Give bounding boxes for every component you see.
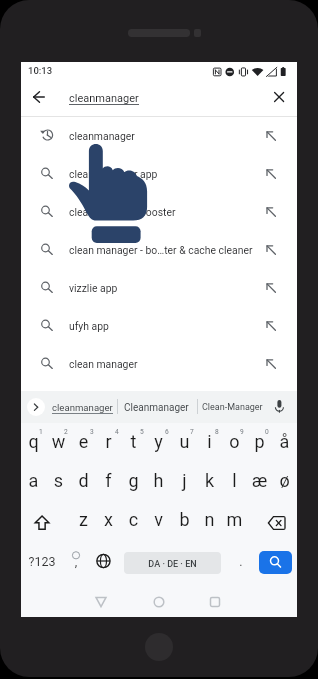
staticText: z <box>71 509 96 530</box>
button[interactable]: w <box>46 424 71 463</box>
button[interactable]: u <box>172 424 197 463</box>
button[interactable]: t <box>121 424 146 463</box>
staticText: 6 <box>165 428 169 436</box>
staticText: 2 <box>64 428 68 436</box>
button[interactable]: Space <box>124 552 221 574</box>
button[interactable]: Recent apps <box>200 588 230 616</box>
staticText: d <box>71 470 96 491</box>
staticText: n <box>197 509 222 530</box>
staticText: å <box>272 431 297 452</box>
button[interactable]: f <box>96 463 121 502</box>
staticText: f <box>96 470 121 491</box>
button[interactable]: y <box>146 424 171 463</box>
button[interactable]: clean manager <box>21 344 297 382</box>
staticText: e <box>71 431 96 452</box>
button[interactable]: Back <box>86 588 116 616</box>
staticText: 5 <box>140 428 144 436</box>
staticText: h <box>146 470 171 491</box>
button[interactable]: Clean-Manager <box>199 393 265 420</box>
staticText: 7 <box>190 428 194 436</box>
button[interactable]: cleanmanager <box>21 116 297 154</box>
button[interactable]: b <box>172 502 197 541</box>
button[interactable]: v <box>146 502 171 541</box>
staticText: g <box>121 470 146 491</box>
button[interactable]: g <box>121 463 146 502</box>
staticText: 3 <box>90 428 94 436</box>
button[interactable]: Cleanmanager <box>121 393 193 420</box>
staticText: cleanmanager <box>52 402 113 413</box>
staticText: l <box>222 470 247 491</box>
staticText: ufyh app <box>69 320 109 332</box>
staticText: u <box>172 431 197 452</box>
staticText: ø <box>272 470 297 491</box>
button[interactable]: cleanmanager <box>49 393 115 420</box>
button[interactable]: Voice input <box>268 395 290 417</box>
button[interactable]: d <box>71 463 96 502</box>
staticText: a <box>21 470 46 491</box>
button[interactable]: c <box>121 502 146 541</box>
staticText: ?123 <box>22 554 62 569</box>
staticText: 10:13 <box>28 65 53 76</box>
staticText: cleanmanager <box>69 92 139 105</box>
button[interactable]: Shift <box>21 502 71 541</box>
staticText: x <box>96 509 121 530</box>
button[interactable]: Back <box>25 83 53 111</box>
button[interactable]: vizzlie app <box>21 268 297 306</box>
button[interactable]: l <box>222 463 247 502</box>
button[interactable]: s <box>46 463 71 502</box>
staticText: clean manager - bo…ter & cache cleaner <box>69 244 253 256</box>
staticText: t <box>121 431 146 452</box>
button[interactable]: e <box>71 424 96 463</box>
staticText: b <box>172 509 197 530</box>
button[interactable]: Home <box>144 588 174 616</box>
button[interactable]: m <box>222 502 247 541</box>
staticText: clean manager booster <box>69 206 176 218</box>
button[interactable]: i <box>197 424 222 463</box>
button[interactable]: Backspace <box>247 502 297 541</box>
button[interactable]: Search <box>259 551 292 574</box>
staticText: clean manager <box>69 358 138 370</box>
button[interactable]: Clear search <box>265 83 293 111</box>
button[interactable]: j <box>172 463 197 502</box>
button[interactable]: h <box>146 463 171 502</box>
button[interactable]: clean manager app <box>21 154 297 192</box>
button[interactable]: , <box>61 541 86 580</box>
button[interactable]: k <box>197 463 222 502</box>
staticText: i <box>197 431 222 452</box>
staticText: Cleanmanager <box>124 402 189 414</box>
button[interactable]: o <box>222 424 247 463</box>
staticText: DA · DE · EN <box>124 559 221 570</box>
staticText: cleanmanager <box>69 130 135 142</box>
button[interactable]: å <box>272 424 297 463</box>
staticText: 1 <box>39 428 43 436</box>
button[interactable]: z <box>71 502 96 541</box>
staticText: j <box>172 470 197 491</box>
button[interactable]: p <box>247 424 272 463</box>
staticText: v <box>146 509 171 530</box>
button[interactable]: clean manager booster <box>21 192 297 230</box>
button[interactable]: x <box>96 502 121 541</box>
staticText: w <box>46 431 71 452</box>
button[interactable]: More suggestions <box>27 398 45 416</box>
button[interactable]: cleanmanager <box>65 84 265 110</box>
button[interactable]: ?123 <box>21 541 61 580</box>
staticText: 0 <box>265 428 269 436</box>
staticText: , <box>66 554 86 569</box>
button[interactable]: æ <box>247 463 272 502</box>
button[interactable]: n <box>197 502 222 541</box>
staticText: c <box>121 509 146 530</box>
staticText: vizzlie app <box>69 282 118 294</box>
staticText: y <box>146 431 171 452</box>
button[interactable]: ufyh app <box>21 306 297 344</box>
staticText: q <box>21 431 46 452</box>
button[interactable]: clean manager - bo…ter & cache cleaner <box>21 230 297 268</box>
button[interactable]: q <box>21 424 46 463</box>
staticText: k <box>197 470 222 491</box>
button[interactable]: Change keyboard language <box>86 541 111 580</box>
button[interactable]: r <box>96 424 121 463</box>
staticText: m <box>222 509 247 530</box>
staticText: 9 <box>240 428 244 436</box>
button[interactable]: . <box>229 541 254 580</box>
button[interactable]: ø <box>272 463 297 502</box>
button[interactable]: a <box>21 463 46 502</box>
